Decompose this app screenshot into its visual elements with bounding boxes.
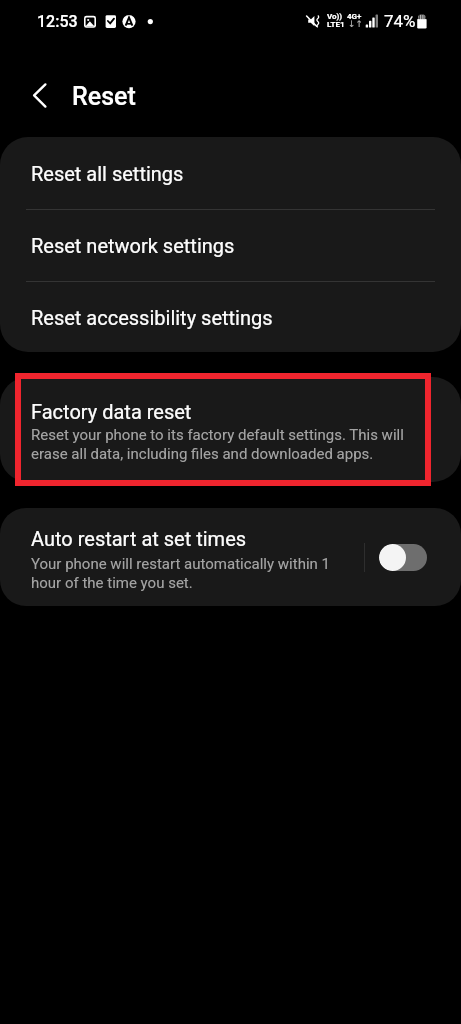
staticText: 12:53 [37,12,78,31]
button[interactable]: Reset all settings [0,137,461,209]
staticText: Reset accessibility settings [31,306,273,329]
staticText: 74% [384,11,416,31]
staticText: Auto restart at set times [31,527,247,550]
staticText: LTE1 [327,20,345,29]
staticText: Reset [72,82,136,111]
staticText: Reset network settings [31,234,235,257]
staticText: ↓↑ [348,19,364,29]
staticText: Vo)) [327,12,343,21]
button[interactable]: Reset accessibility settings [0,282,461,352]
button[interactable]: Back [18,73,62,117]
button[interactable]: Auto restart at set times [0,508,461,606]
staticText: 4G+ [347,12,362,21]
staticText: Factory data reset [31,400,192,423]
button[interactable]: Auto restart at set times toggle [379,544,427,571]
button[interactable]: Factory data reset [0,377,461,482]
staticText: Your phone will restart automatically wi… [31,555,331,592]
button[interactable]: Reset network settings [0,210,461,281]
staticText: Reset your phone to its factory default … [31,426,407,463]
staticText: Reset all settings [31,162,184,185]
